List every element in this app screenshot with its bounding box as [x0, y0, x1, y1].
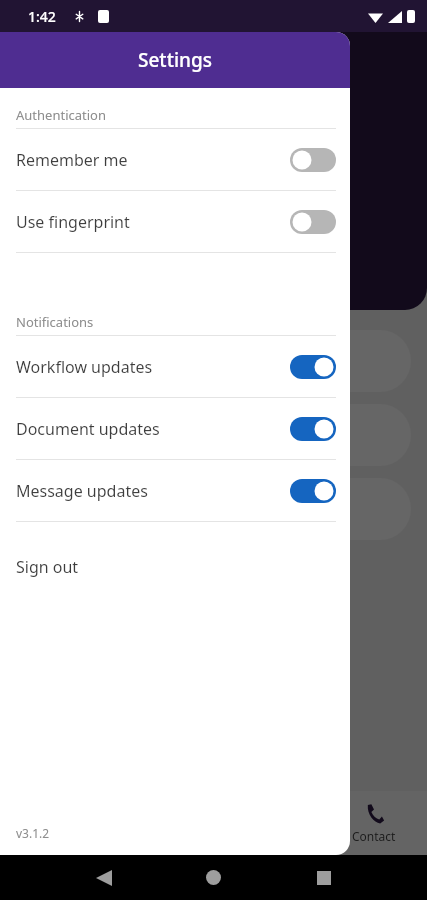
staticText: Welcome!: [250, 16, 328, 39]
staticText: Workflows: [40, 424, 119, 446]
button[interactable]: Home: [0, 791, 106, 855]
staticText: Settings: [138, 47, 212, 73]
staticText: Message updates: [16, 480, 290, 502]
button[interactable]: Remember me: [0, 129, 350, 190]
staticText: Workflow updates: [16, 356, 290, 378]
staticText: Authentication: [16, 106, 106, 124]
button[interactable]: Back: [96, 870, 112, 886]
button[interactable]: Workflow updates: [0, 336, 350, 397]
staticText: Home: [36, 828, 71, 844]
button[interactable]: Contact: [320, 791, 427, 855]
staticText: Sign out: [16, 556, 79, 578]
staticText: Workflows: [40, 350, 119, 372]
button[interactable]: Home: [206, 870, 221, 885]
button[interactable]: Workflows: [16, 404, 411, 466]
button[interactable]: Sign out: [0, 544, 350, 590]
staticText: Remember me: [16, 149, 290, 171]
staticText: Notifications: [16, 313, 94, 331]
staticText: 1:42: [28, 7, 56, 26]
button[interactable]: Workflows: [16, 330, 411, 392]
button[interactable]: Document updates: [0, 398, 350, 459]
staticText: Use fingerprint: [16, 211, 290, 233]
button[interactable]: Workflows: [16, 478, 411, 540]
staticText: Contact: [352, 828, 396, 844]
staticText: Document updates: [16, 418, 290, 440]
button[interactable]: Use fingerprint: [0, 191, 350, 252]
button[interactable]: Message updates: [0, 460, 350, 521]
staticText: Workflows: [40, 498, 119, 520]
staticText: v3.1.2: [16, 825, 50, 841]
